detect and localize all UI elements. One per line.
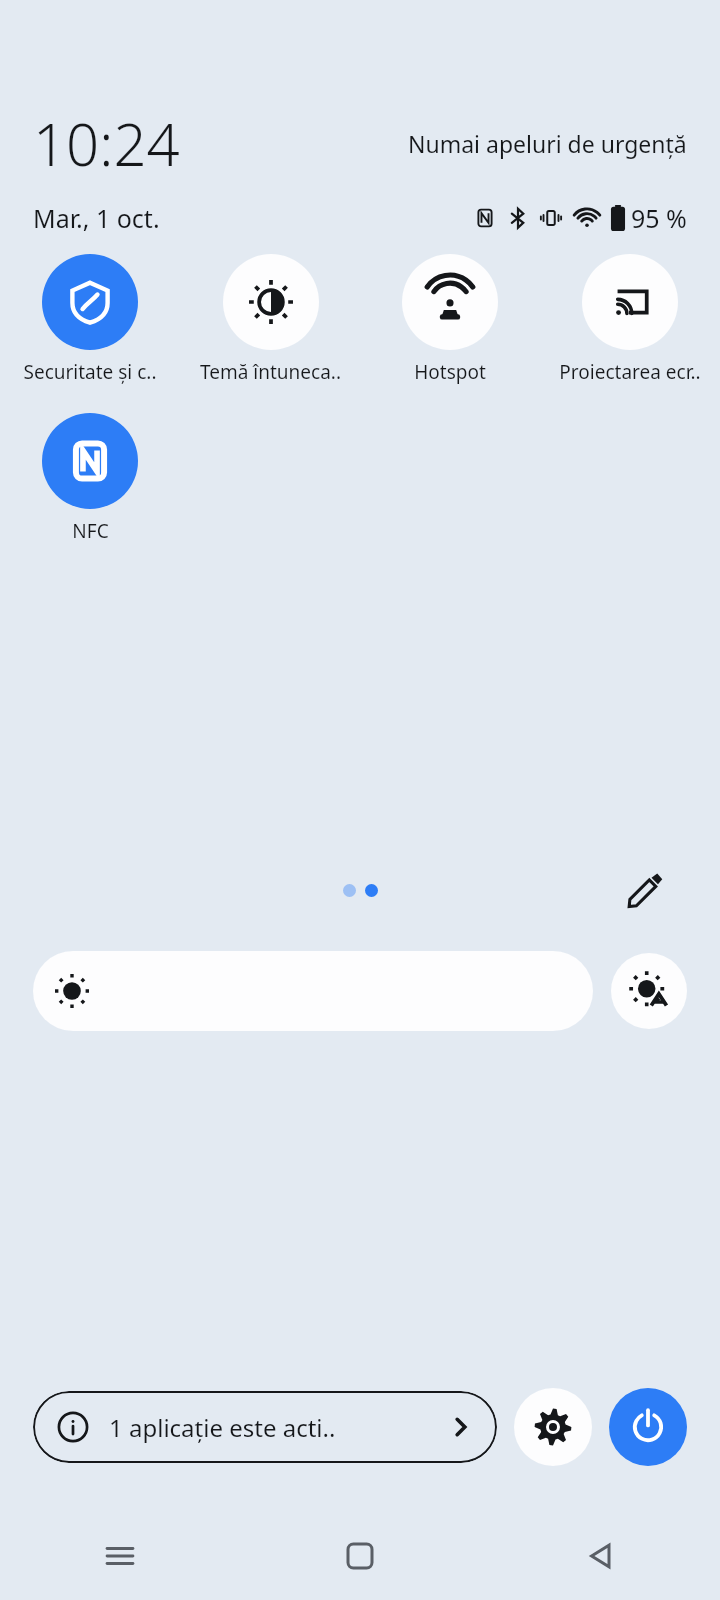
button[interactable]: Auto brightness (611, 953, 687, 1029)
button[interactable]: Proiectarea ecr.. (559, 254, 701, 385)
button[interactable]: Securitate și c.. (23, 254, 157, 385)
staticText: Temă întuneca.. (200, 359, 341, 385)
button[interactable]: Hotspot (402, 254, 498, 385)
staticText: 1 aplicație este acti.. (109, 1411, 336, 1444)
button[interactable]: NFC (42, 413, 138, 544)
button[interactable]: Brightness (33, 951, 593, 1031)
staticText: Securitate și c.. (23, 359, 157, 385)
button[interactable]: Back (480, 1520, 720, 1592)
button[interactable]: Settings (514, 1388, 592, 1466)
staticText: 10:24 (33, 104, 180, 183)
staticText: Mar., 1 oct. (33, 201, 160, 235)
staticText: Numai apeluri de urgență (408, 128, 687, 159)
staticText: Hotspot (414, 359, 486, 385)
staticText: Proiectarea ecr.. (559, 359, 701, 385)
button[interactable]: Temă întuneca.. (200, 254, 341, 385)
staticText: NFC (72, 518, 109, 544)
button[interactable]: 1 aplicație este acti.. (33, 1391, 497, 1463)
staticText: 95 % (631, 201, 687, 235)
button[interactable]: Recent apps (0, 1520, 240, 1592)
button[interactable]: Home (240, 1520, 480, 1592)
button[interactable]: Power (609, 1388, 687, 1466)
button[interactable]: Edit (622, 867, 668, 913)
